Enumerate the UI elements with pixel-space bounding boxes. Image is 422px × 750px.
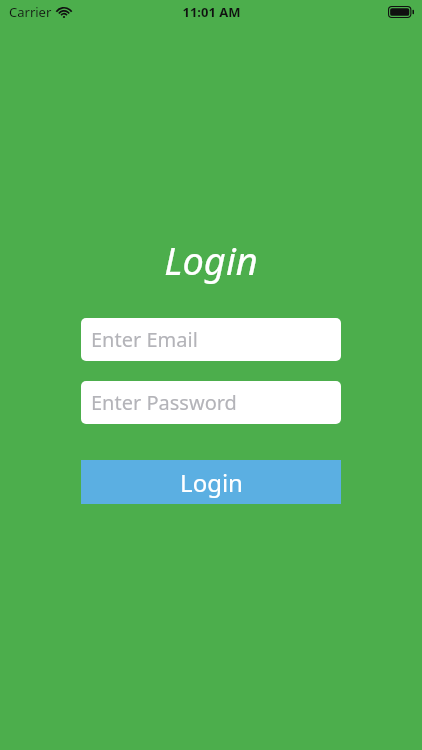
staticText: Enter Password: [91, 389, 237, 416]
staticText: Login: [180, 466, 243, 499]
other: Wi-Fi signal: [57, 7, 71, 18]
staticText: 11:01 AM: [182, 3, 241, 21]
staticText: Carrier: [9, 3, 52, 21]
button[interactable]: Enter Password: [81, 381, 341, 424]
button[interactable]: Login: [81, 460, 341, 504]
button[interactable]: Enter Email: [81, 318, 341, 361]
staticText: Enter Email: [91, 326, 198, 353]
staticText: Login: [164, 234, 258, 286]
other: Battery full: [388, 6, 414, 18]
